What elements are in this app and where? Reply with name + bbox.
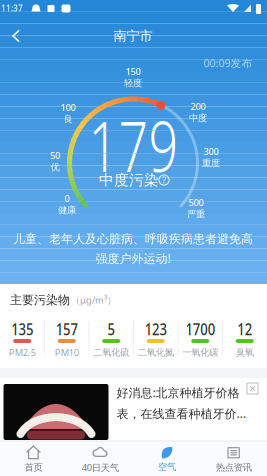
staticText: 00:09发布 (203, 56, 252, 70)
staticText: PM2.5 (9, 346, 36, 359)
staticText: 表，在线查看种植牙价… (116, 405, 245, 421)
staticText: 南宁市 (113, 28, 152, 44)
staticText: 157 (53, 318, 80, 340)
staticText: 良 (63, 113, 72, 125)
button[interactable]: 热点资讯 (200, 442, 267, 476)
staticText: 空气 (158, 461, 176, 473)
staticText: 123 (142, 318, 169, 340)
staticText: 1700 (182, 318, 218, 340)
staticText: 严重 (187, 208, 205, 220)
staticText: 11:37 (1, 3, 23, 14)
staticText: 中度 (189, 112, 207, 124)
staticText: 150 (125, 65, 140, 77)
staticText: 主要污染物 (10, 293, 70, 307)
staticText: 轻度 (124, 77, 142, 89)
staticText: 一氧化碳 (182, 347, 218, 358)
staticText: 重度 (202, 157, 220, 169)
staticText: 二氧化氮 (138, 347, 174, 358)
button[interactable] (7, 24, 25, 47)
button[interactable]: 首页 (0, 442, 67, 476)
button[interactable]: 空气 (133, 442, 200, 476)
staticText: 中度污染 (99, 171, 159, 189)
button[interactable]: 40日天气 (67, 442, 134, 476)
staticText: 5 (107, 318, 116, 340)
staticText: 强度户外运动! (95, 250, 170, 266)
staticText: 好消息:北京种植牙价格 (116, 385, 239, 400)
staticText: （μg/m³） (71, 294, 116, 306)
staticText: 300 (203, 145, 218, 157)
staticText: PM10 (55, 346, 79, 359)
staticText: 0 (64, 192, 69, 204)
staticText: 12 (236, 318, 254, 340)
staticText: 热点资讯 (216, 462, 252, 473)
staticText: 臭氧 (236, 347, 254, 358)
staticText: 健康 (58, 204, 76, 216)
staticText: ? (162, 174, 166, 186)
staticText: 40日天气 (82, 461, 119, 474)
staticText: 儿童、老年人及心脏病、呼吸疾病患者避免高 (13, 232, 253, 246)
staticText: 首页 (24, 462, 42, 473)
staticText: 50 (50, 149, 60, 161)
staticText: 200 (190, 100, 205, 112)
staticText: 100 (60, 101, 75, 113)
staticText: 优 (50, 161, 59, 173)
staticText: 二氧化硫 (93, 347, 129, 358)
staticText: 179 (73, 99, 193, 191)
button[interactable]: ? (159, 175, 169, 185)
staticText: 500 (188, 196, 203, 208)
staticText: 135 (9, 318, 36, 340)
button[interactable]: 好消息:北京种植牙价格 (0, 378, 267, 441)
button[interactable] (247, 383, 258, 394)
